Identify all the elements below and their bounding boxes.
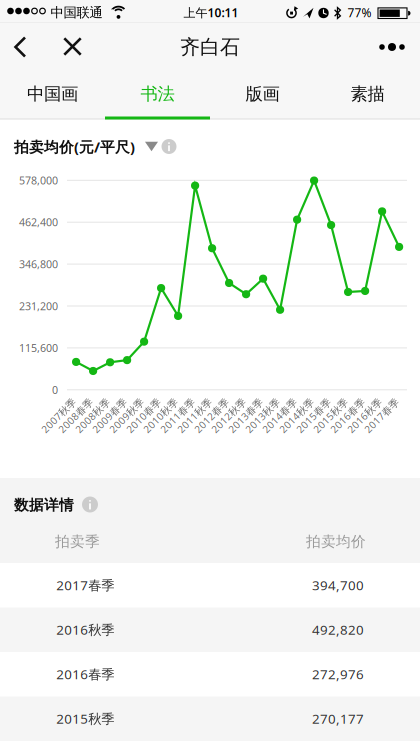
button[interactable]: More — [372, 28, 412, 66]
staticText: 数据详情 — [14, 496, 74, 514]
staticText: 2007秋季 — [37, 409, 81, 422]
staticText: 2012秋季 — [207, 409, 251, 422]
button[interactable]: Choose metric — [144, 141, 158, 152]
staticText: 拍卖季 — [55, 532, 100, 550]
staticText: 中国联通 — [50, 4, 102, 21]
staticText: 2009春季 — [88, 409, 132, 422]
staticText: 272,976 — [312, 665, 364, 683]
staticText: 2012春季 — [190, 409, 234, 422]
staticText: 2015秋季 — [309, 409, 353, 422]
staticText: 77% — [347, 4, 371, 20]
button[interactable]: About this metric — [161, 139, 176, 154]
staticText: 齐白石 — [180, 35, 240, 59]
staticText: 2008春季 — [54, 409, 98, 422]
button[interactable]: 中国画 — [0, 69, 105, 119]
staticText: 2016秋季 — [56, 621, 114, 638]
staticText: 2011秋季 — [173, 409, 217, 422]
staticText: 2016秋季 — [343, 409, 387, 422]
staticText: 上午10:11 — [183, 4, 238, 20]
staticText: 578,000 — [19, 173, 58, 187]
staticText: 中国画 — [27, 83, 78, 105]
button[interactable]: 素描 — [315, 69, 420, 119]
button[interactable]: Close — [52, 27, 92, 65]
staticText: 2015春季 — [292, 409, 336, 422]
staticText: 2010春季 — [122, 409, 166, 422]
staticText: 拍卖均价 — [306, 532, 366, 550]
staticText: 2008秋季 — [71, 409, 115, 422]
staticText: 346,800 — [19, 257, 58, 271]
staticText: 素描 — [350, 83, 384, 105]
staticText: 2009秋季 — [105, 409, 149, 422]
staticText: 492,820 — [312, 621, 364, 638]
staticText: 2010秋季 — [139, 409, 183, 422]
staticText: 270,177 — [312, 710, 364, 727]
staticText: 2016春季 — [56, 665, 114, 683]
staticText: 2014春季 — [258, 409, 302, 422]
staticText: 2014秋季 — [275, 409, 319, 422]
staticText: 2015秋季 — [56, 710, 114, 727]
staticText: 2017春季 — [56, 576, 114, 594]
staticText: 394,700 — [312, 576, 364, 594]
button[interactable]: 书法 — [105, 69, 210, 119]
button[interactable]: Back — [0, 28, 40, 66]
staticText: 462,400 — [19, 215, 58, 229]
staticText: 2013春季 — [224, 409, 268, 422]
staticText: 2016春季 — [326, 409, 370, 422]
button[interactable]: 版画 — [210, 69, 315, 119]
staticText: 231,200 — [19, 299, 58, 313]
staticText: 2017春季 — [360, 409, 404, 422]
staticText: 2013秋季 — [241, 409, 285, 422]
staticText: 拍卖均价(元/平尺) — [14, 137, 135, 156]
staticText: 0 — [52, 383, 58, 397]
staticText: 书法 — [140, 83, 174, 105]
staticText: 115,600 — [19, 341, 58, 355]
button[interactable]: About the data — [82, 496, 98, 512]
staticText: 2011春季 — [156, 409, 200, 422]
staticText: 版画 — [245, 83, 279, 105]
